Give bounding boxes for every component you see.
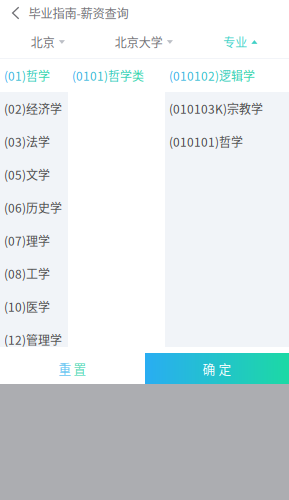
button[interactable]: (: [68, 59, 165, 92]
staticText: 置: [73, 359, 86, 378]
staticText: 1: [194, 67, 201, 84]
staticText: (: [169, 67, 173, 84]
button[interactable]: (07)理学: [0, 224, 68, 257]
button[interactable]: 确 定: [145, 353, 289, 384]
staticText: 0: [187, 67, 194, 84]
button[interactable]: 重: [0, 353, 145, 384]
staticText: 类: [132, 67, 144, 84]
button[interactable]: (10)医学: [0, 290, 68, 323]
staticText: 2: [208, 67, 215, 84]
staticText: 0: [90, 67, 97, 84]
staticText: 0: [76, 67, 83, 84]
staticText: 逻: [219, 67, 231, 84]
button[interactable]: (05)文学: [0, 158, 68, 191]
button[interactable]: (: [165, 59, 289, 92]
staticText: ): [215, 67, 219, 84]
staticText: ): [22, 67, 26, 84]
staticText: 北京大学: [115, 33, 163, 51]
button[interactable]: 北京: [0, 26, 96, 58]
staticText: (10)医学: [4, 298, 50, 315]
staticText: 哲: [108, 67, 120, 84]
staticText: 确 定: [202, 359, 231, 378]
staticText: 北京: [31, 33, 55, 51]
button[interactable]: 北京大学: [96, 26, 192, 58]
staticText: (07)理学: [4, 232, 50, 249]
button[interactable]: 专业: [192, 26, 289, 58]
staticText: (08)工学: [4, 265, 50, 282]
staticText: 学: [243, 67, 255, 84]
staticText: 专业: [223, 33, 247, 51]
button[interactable]: (010103K)宗教学: [165, 92, 289, 125]
staticText: 毕业指南-薪资查询: [28, 4, 128, 22]
staticText: 1: [97, 67, 104, 84]
staticText: 学: [38, 67, 50, 84]
staticText: (010101)哲学: [169, 133, 243, 150]
staticText: 辑: [231, 67, 243, 84]
button[interactable]: (010101)哲学: [165, 125, 289, 158]
staticText: 0: [201, 67, 208, 84]
staticText: (010103K)宗教学: [169, 100, 263, 117]
staticText: 学: [120, 67, 132, 84]
staticText: (: [4, 67, 8, 84]
staticText: 0: [8, 67, 15, 84]
staticText: 哲: [26, 67, 38, 84]
staticText: (03)法学: [4, 133, 50, 150]
staticText: (12)管理学: [4, 331, 62, 348]
button[interactable]: (08)工学: [0, 257, 68, 290]
staticText: (06)历史学: [4, 199, 62, 216]
staticText: 0: [173, 67, 180, 84]
button[interactable]: (: [0, 59, 68, 92]
button[interactable]: (02)经济学: [0, 92, 68, 125]
button[interactable]: (12)管理学: [0, 323, 68, 356]
staticText: (05)文学: [4, 166, 50, 183]
staticText: ): [104, 67, 108, 84]
staticText: 1: [180, 67, 187, 84]
staticText: 重: [58, 359, 71, 378]
staticText: 1: [83, 67, 90, 84]
button[interactable]: Back: [0, 0, 28, 26]
button[interactable]: (06)历史学: [0, 191, 68, 224]
staticText: (: [72, 67, 76, 84]
staticText: (02)经济学: [4, 100, 62, 117]
staticText: 1: [15, 67, 22, 84]
button[interactable]: (03)法学: [0, 125, 68, 158]
